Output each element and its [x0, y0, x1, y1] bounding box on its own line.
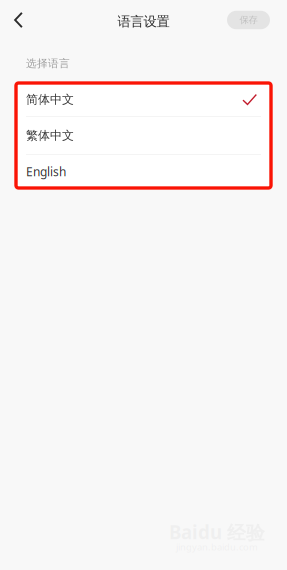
- staticText: English: [26, 163, 66, 179]
- staticText: Baidu 经验: [169, 520, 265, 545]
- button[interactable]: 繁体中文: [16, 117, 271, 154]
- button[interactable]: Back: [0, 0, 37, 40]
- staticText: 简体中文: [26, 92, 74, 107]
- button[interactable]: 简体中文: [16, 83, 271, 116]
- button[interactable]: English: [16, 155, 271, 188]
- staticText: 繁体中文: [26, 128, 74, 143]
- staticText: 保存: [239, 14, 257, 26]
- staticText: 语言设置: [117, 13, 169, 30]
- button[interactable]: 保存: [227, 11, 270, 29]
- staticText: 选择语言: [26, 57, 70, 70]
